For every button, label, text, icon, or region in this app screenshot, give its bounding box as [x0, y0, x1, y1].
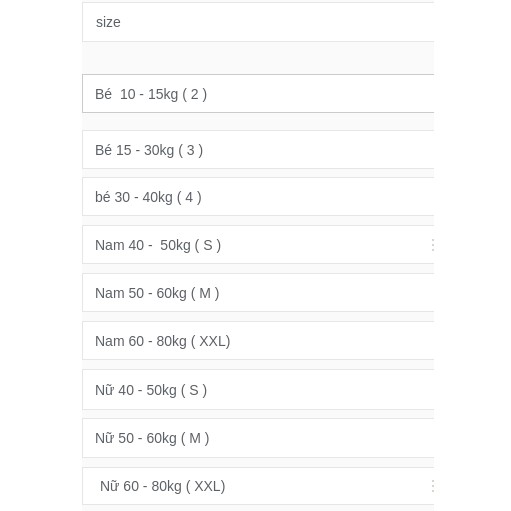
staticText: Nam 40 - 50kg ( S ) — [95, 237, 222, 253]
staticText: Bé 15 - 30kg ( 3 ) — [95, 142, 204, 158]
staticText: bé 30 - 40kg ( 4 ) — [95, 189, 202, 205]
button[interactable]: Nữ 50 - 60kg ( M ) — [82, 418, 434, 458]
staticText: size — [96, 14, 121, 30]
button[interactable]: Nam 50 - 60kg ( M ) — [82, 273, 434, 312]
button[interactable]: size — [82, 2, 434, 42]
staticText: Nam 60 - 80kg ( XXL) — [95, 333, 231, 349]
button[interactable]: Nữ 60 - 80kg ( XXL) — [82, 467, 434, 505]
staticText: Nữ 50 - 60kg ( M ) — [95, 430, 210, 446]
button[interactable]: Bé 15 - 30kg ( 3 ) — [82, 130, 434, 169]
button[interactable]: More options — [430, 239, 434, 251]
button[interactable]: Bé 10 - 15kg ( 2 ) — [82, 74, 434, 113]
button[interactable]: bé 30 - 40kg ( 4 ) — [82, 177, 434, 216]
staticText: Nữ 40 - 50kg ( S ) — [95, 382, 208, 398]
staticText: Bé 10 - 15kg ( 2 ) — [95, 86, 208, 102]
button[interactable]: Nam 40 - 50kg ( S ) — [82, 225, 434, 264]
button[interactable]: More options — [430, 480, 434, 492]
staticText: Nam 50 - 60kg ( M ) — [95, 285, 220, 301]
staticText: Nữ 60 - 80kg ( XXL) — [100, 478, 226, 494]
button[interactable]: Nữ 40 - 50kg ( S ) — [82, 369, 434, 410]
button[interactable]: Nam 60 - 80kg ( XXL) — [82, 321, 434, 360]
